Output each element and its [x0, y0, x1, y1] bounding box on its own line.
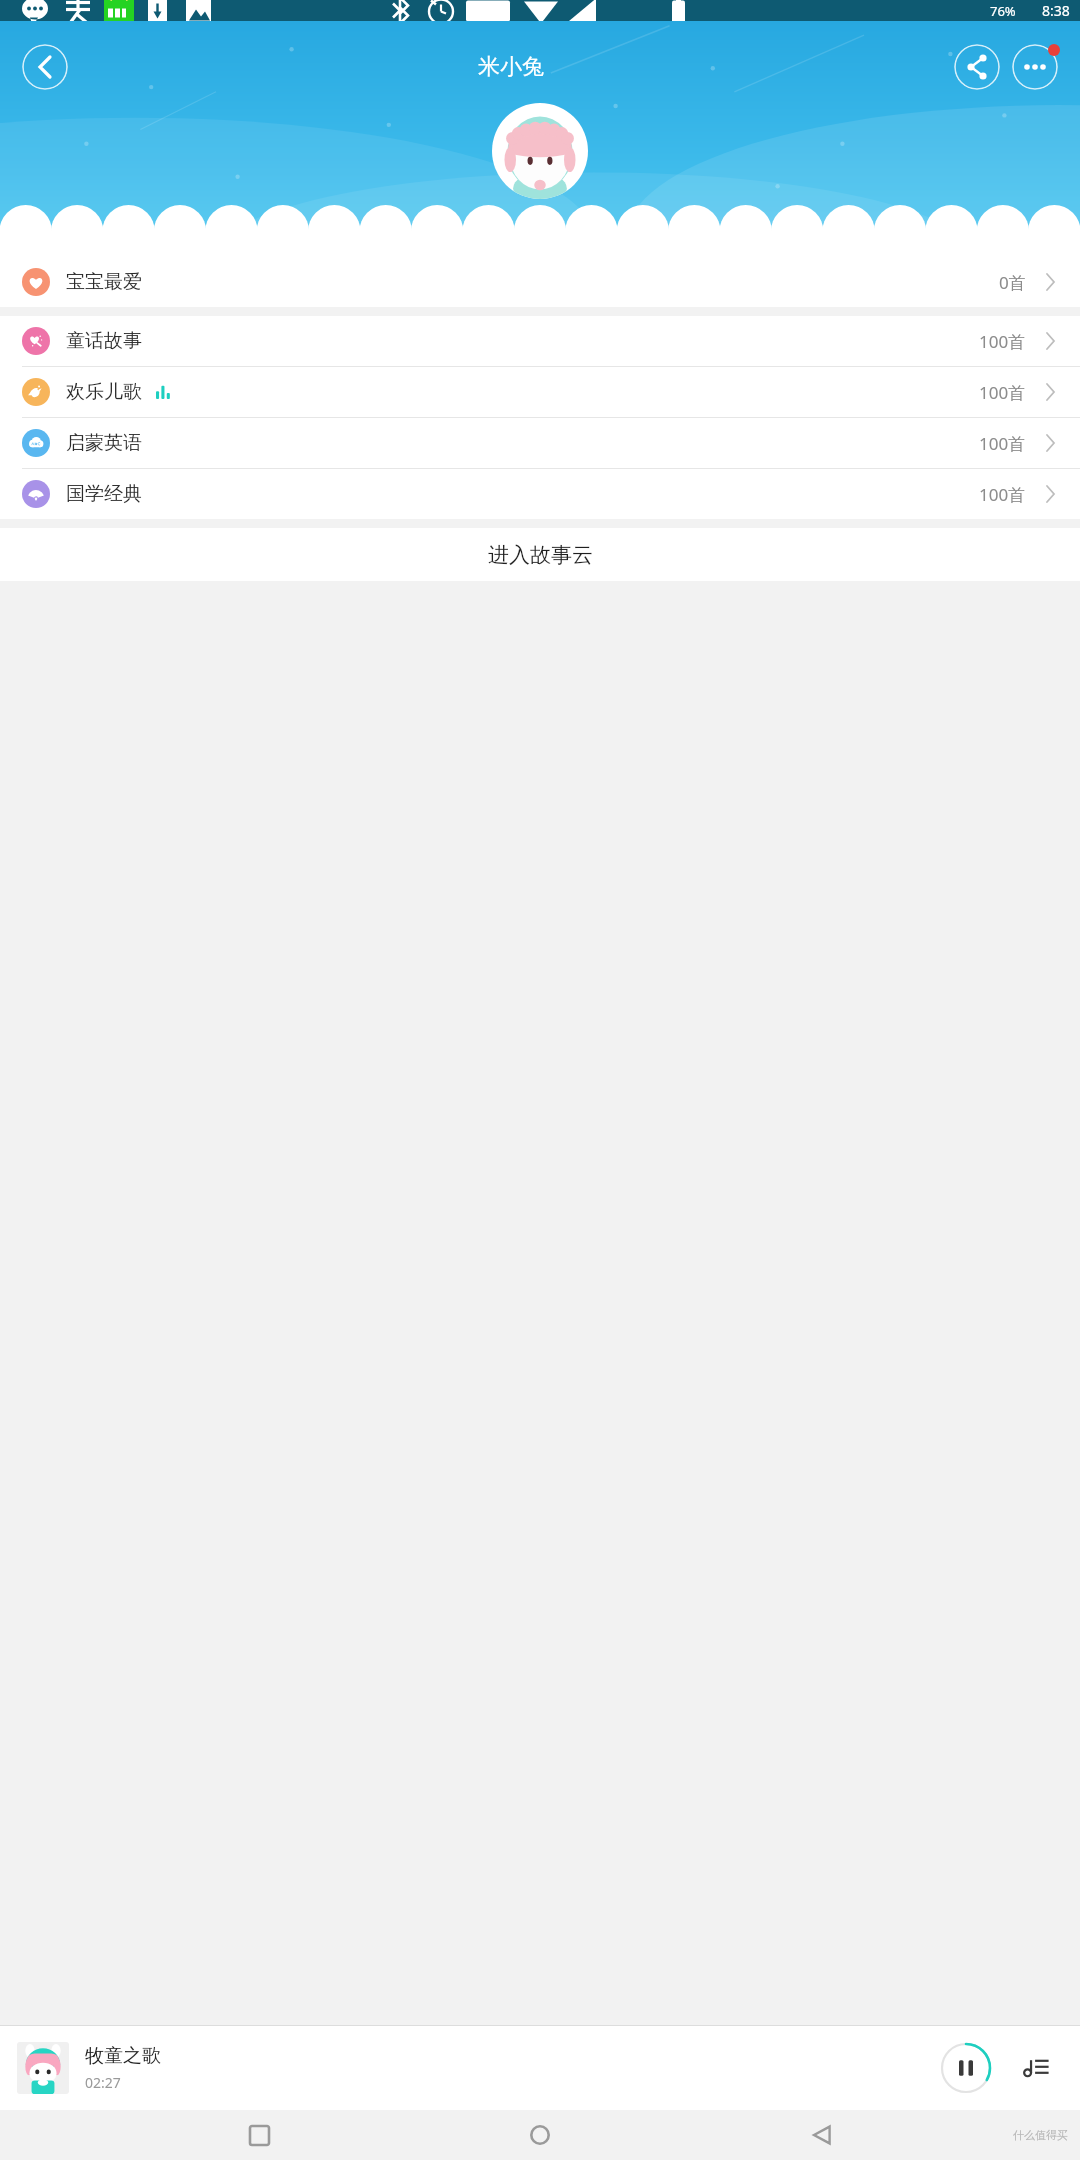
button[interactable]: Pause	[940, 2042, 992, 2094]
button[interactable]: 进入故事云	[0, 528, 1080, 581]
staticText: 米小兔	[478, 53, 544, 81]
button[interactable]: 欢乐儿歌	[0, 367, 1080, 417]
button[interactable]: Profile avatar	[492, 103, 588, 199]
staticText: 宝宝最爱	[66, 270, 142, 294]
staticText: 启蒙英语	[66, 431, 142, 455]
button[interactable]: Share	[954, 44, 1000, 90]
button[interactable]: 宝宝最爱	[0, 257, 1080, 307]
staticText: 100首	[979, 381, 1026, 404]
button[interactable]: 启蒙英语	[0, 418, 1080, 468]
button[interactable]: 童话故事	[0, 316, 1080, 366]
button[interactable]: Back	[22, 44, 68, 90]
staticText: 猪猪	[521, 209, 559, 233]
staticText: 100首	[979, 330, 1026, 353]
staticText: 牧童之歌	[85, 2044, 161, 2068]
staticText: 国学经典	[66, 482, 142, 506]
staticText: 100首	[979, 483, 1026, 506]
staticText: 欢乐儿歌	[66, 380, 142, 404]
button[interactable]: More options	[1012, 44, 1058, 90]
button[interactable]: Home	[517, 2112, 563, 2158]
staticText: 100首	[979, 432, 1026, 455]
staticText: 童话故事	[66, 329, 142, 353]
button[interactable]: 国学经典	[0, 469, 1080, 519]
staticText: 进入故事云	[488, 542, 593, 568]
button[interactable]: Back	[799, 2112, 845, 2158]
button[interactable]: Recents	[236, 2112, 282, 2158]
staticText: 8:38	[1042, 1, 1070, 20]
staticText: 什么值得买	[1013, 2128, 1068, 2142]
button[interactable]: Now playing cover	[17, 2042, 69, 2094]
staticText: 76%	[990, 2, 1016, 20]
staticText: 02:27	[85, 2073, 121, 2092]
button[interactable]: Playlist	[1014, 2046, 1058, 2090]
staticText: 0首	[999, 271, 1026, 294]
